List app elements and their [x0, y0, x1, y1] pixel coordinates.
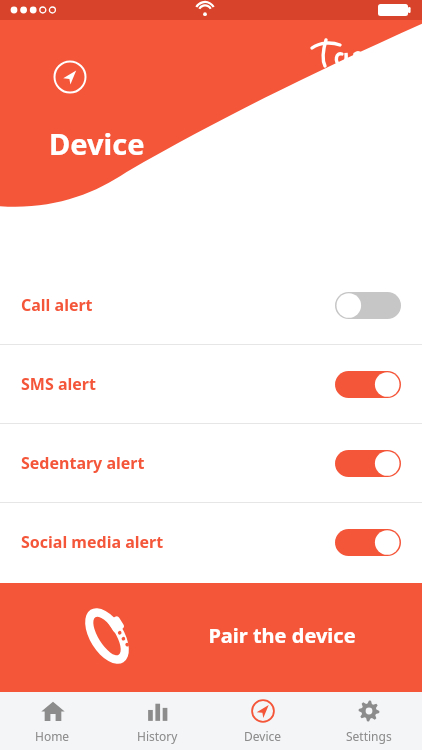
- button[interactable]: Pair the device: [0, 583, 422, 688]
- staticText: Social media alert: [21, 531, 164, 553]
- staticText: History: [137, 728, 178, 744]
- button[interactable]: Sedentary alert: [0, 424, 422, 502]
- button[interactable]: History: [105, 692, 210, 750]
- staticText: Home: [35, 728, 70, 744]
- button[interactable]: On: [335, 529, 401, 556]
- button[interactable]: Off: [335, 292, 401, 319]
- staticText: Sedentary alert: [21, 452, 145, 474]
- button[interactable]: SMS alert: [0, 345, 422, 423]
- button[interactable]: Home: [0, 692, 105, 750]
- button[interactable]: Call alert: [0, 266, 422, 344]
- staticText: Call alert: [21, 294, 93, 316]
- staticText: Pair the device: [208, 622, 356, 649]
- button[interactable]: On: [335, 450, 401, 477]
- button[interactable]: Social media alert: [0, 503, 422, 581]
- staticText: SMS alert: [21, 373, 96, 395]
- button[interactable]: On: [335, 371, 401, 398]
- staticText: Device: [244, 728, 282, 744]
- staticText: Device: [49, 124, 145, 163]
- button[interactable]: Settings: [316, 692, 422, 750]
- staticText: Settings: [346, 728, 392, 744]
- button[interactable]: Device: [210, 692, 316, 750]
